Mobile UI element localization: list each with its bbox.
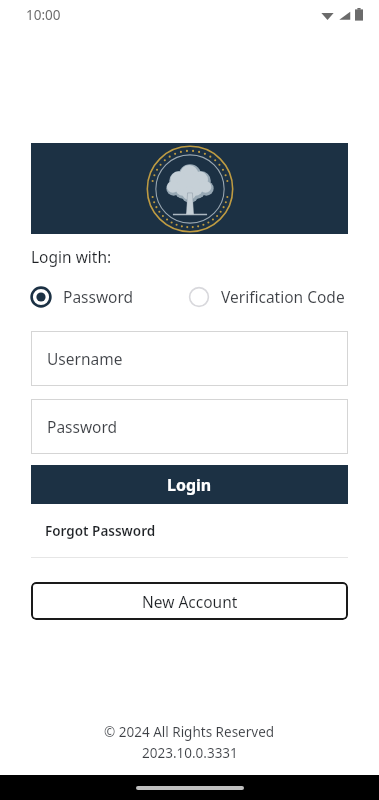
staticText: New Account — [142, 591, 238, 612]
button[interactable]: Password — [31, 399, 348, 454]
staticText: Login with: — [31, 246, 112, 267]
staticText: Password — [63, 286, 134, 307]
staticText: Password — [47, 416, 118, 437]
staticText: Forgot Password — [45, 522, 156, 540]
staticText: Verification Code — [221, 286, 345, 307]
other: Home gesture bar — [136, 786, 244, 790]
button[interactable]: Password — [31, 280, 189, 313]
staticText: Login — [167, 474, 212, 496]
button[interactable]: Login — [31, 465, 348, 504]
staticText: © 2024 All Rights Reserved — [104, 723, 275, 741]
button[interactable]: Username — [31, 331, 348, 386]
button[interactable]: New Account — [31, 582, 348, 620]
staticText: 2023.10.0.3331 — [142, 744, 238, 762]
button[interactable]: Verification Code — [189, 280, 348, 313]
staticText: Username — [47, 348, 123, 369]
staticText: 10:00 — [26, 6, 61, 24]
button[interactable]: Forgot Password — [31, 517, 166, 545]
